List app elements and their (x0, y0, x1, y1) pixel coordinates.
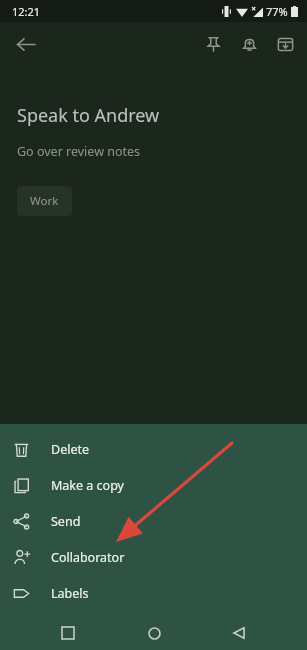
staticText: Work (30, 193, 59, 209)
staticText: 77% (266, 4, 288, 19)
staticText: Send (51, 513, 81, 530)
staticText: Labels (51, 585, 89, 602)
staticText: Delete (51, 441, 90, 458)
button[interactable]: Add reminder (231, 26, 267, 62)
button[interactable]: Back (222, 616, 256, 650)
button[interactable]: Home (137, 616, 171, 650)
button[interactable]: Send (0, 503, 307, 539)
button[interactable]: Work (17, 186, 72, 216)
staticText: Speak to Andrew (17, 103, 160, 128)
staticText: 12:21 (12, 4, 41, 19)
button[interactable]: Back (7, 26, 43, 62)
button[interactable]: Collaborator (0, 539, 307, 575)
button[interactable]: Make a copy (0, 467, 307, 503)
button[interactable]: Delete (0, 431, 307, 467)
staticText: Collaborator (51, 549, 125, 566)
button[interactable]: Labels (0, 575, 307, 611)
button[interactable]: Archive (267, 26, 303, 62)
staticText: Make a copy (51, 477, 124, 494)
button[interactable]: Pin (195, 26, 231, 62)
button[interactable]: Recents (51, 616, 85, 650)
staticText: Go over review notes (17, 143, 141, 160)
